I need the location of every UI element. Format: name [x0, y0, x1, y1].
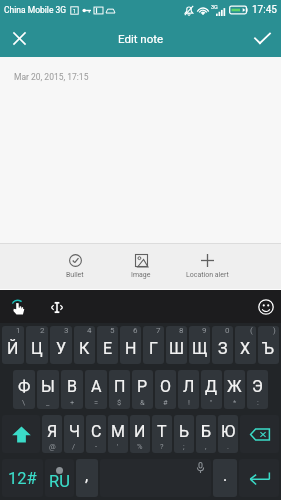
staticText: \: [22, 398, 26, 407]
staticText: И: [134, 422, 146, 441]
staticText: 2: [40, 326, 45, 335]
button[interactable]: У: [50, 326, 72, 364]
staticText: 9: [202, 326, 207, 335]
staticText: 6: [133, 326, 138, 335]
button[interactable]: Space: [100, 459, 211, 497]
button[interactable]: З: [212, 326, 233, 364]
button[interactable]: Ь: [174, 415, 194, 453]
button[interactable]: Move cursor: [44, 294, 70, 320]
staticText: %: [137, 442, 143, 451]
button[interactable]: С: [86, 415, 106, 453]
staticText: ?: [160, 442, 164, 451]
staticText: П: [114, 377, 126, 396]
staticText: Б: [201, 422, 212, 441]
button[interactable]: А: [85, 370, 107, 409]
button[interactable]: Backspace: [240, 415, 279, 453]
staticText: ,: [205, 442, 207, 451]
button[interactable]: Н: [120, 326, 141, 364]
button[interactable]: В: [61, 370, 83, 409]
staticText: 8: [179, 326, 184, 335]
staticText: Image: [131, 271, 151, 279]
staticText: С: [91, 422, 102, 441]
staticText: Т: [157, 422, 167, 441]
button[interactable]: Ы: [37, 370, 59, 409]
staticText: /: [72, 442, 76, 451]
button[interactable]: М: [108, 415, 128, 453]
staticText: #: [163, 398, 168, 407]
staticText: Д: [205, 377, 218, 396]
button[interactable]: Г: [143, 326, 164, 364]
staticText: З: [218, 339, 228, 358]
staticText: ': [117, 442, 119, 451]
staticText: 7: [156, 326, 161, 335]
button[interactable]: Р: [132, 370, 153, 409]
staticText: 5: [110, 326, 115, 335]
staticText: 3: [64, 326, 69, 335]
staticText: Ц: [31, 339, 43, 358]
staticText: RU: [49, 472, 70, 491]
staticText: $: [117, 398, 122, 407]
button[interactable]: Bullet: [58, 250, 92, 283]
button[interactable]: Й: [2, 326, 24, 364]
button[interactable]: Handwriting input: [6, 294, 32, 320]
button[interactable]: Enter: [239, 459, 279, 497]
staticText: 17:45: [252, 4, 277, 16]
staticText: Е: [103, 339, 113, 358]
button[interactable]: .: [213, 459, 237, 497]
staticText: .: [223, 466, 228, 485]
staticText: Р: [137, 377, 148, 396]
button[interactable]: Save: [243, 20, 281, 57]
button[interactable]: Emoji: [253, 294, 279, 320]
staticText: 1: [73, 8, 77, 14]
button[interactable]: О: [155, 370, 176, 409]
button[interactable]: Д: [201, 370, 222, 409]
button[interactable]: Ж: [224, 370, 245, 409]
staticText: Ч: [69, 422, 80, 441]
button[interactable]: Х: [235, 326, 256, 364]
button[interactable]: Л: [178, 370, 199, 409]
button[interactable]: Ч: [64, 415, 84, 453]
button[interactable]: 12#: [2, 459, 43, 497]
staticText: _: [46, 398, 50, 407]
staticText: 4: [87, 326, 92, 335]
staticText: 1: [16, 326, 21, 335]
staticText: Ь: [179, 422, 190, 441]
staticText: О: [160, 377, 172, 396]
button[interactable]: Э: [247, 370, 268, 409]
button[interactable]: Ц: [26, 326, 48, 364]
button[interactable]: Б: [196, 415, 216, 453]
button[interactable]: Ф: [13, 370, 35, 409]
staticText: China Mobile 3G: [4, 5, 67, 15]
staticText: Ш: [169, 339, 185, 358]
button[interactable]: Close: [0, 20, 38, 57]
button[interactable]: ,: [76, 459, 98, 497]
button[interactable]: RU: [45, 459, 74, 497]
button[interactable]: Е: [97, 326, 118, 364]
button[interactable]: К: [74, 326, 95, 364]
staticText: 0: [225, 326, 230, 335]
button[interactable]: И: [130, 415, 150, 453]
staticText: @: [49, 442, 56, 451]
staticText: Ы: [41, 377, 55, 396]
staticText: Э: [252, 377, 263, 396]
button[interactable]: Image: [123, 250, 159, 283]
button[interactable]: Т: [152, 415, 172, 453]
button[interactable]: Ю: [218, 415, 238, 453]
staticText: -: [95, 442, 98, 451]
staticText: :: [257, 398, 259, 407]
button[interactable]: Ш: [166, 326, 187, 364]
button[interactable]: Щ: [189, 326, 210, 364]
button[interactable]: Shift: [2, 415, 40, 453]
button[interactable]: Location alert: [178, 250, 237, 283]
staticText: &: [140, 398, 145, 407]
staticText: ,: [85, 466, 89, 485]
button[interactable]: Ъ: [258, 326, 279, 364]
button[interactable]: Я: [42, 415, 62, 453]
button[interactable]: П: [109, 370, 130, 409]
staticText: Л: [183, 377, 195, 396]
staticText: (: [250, 326, 253, 335]
staticText: Ф: [18, 377, 31, 396]
staticText: *: [233, 398, 237, 407]
staticText: Й: [7, 339, 19, 358]
staticText: .: [227, 442, 229, 451]
